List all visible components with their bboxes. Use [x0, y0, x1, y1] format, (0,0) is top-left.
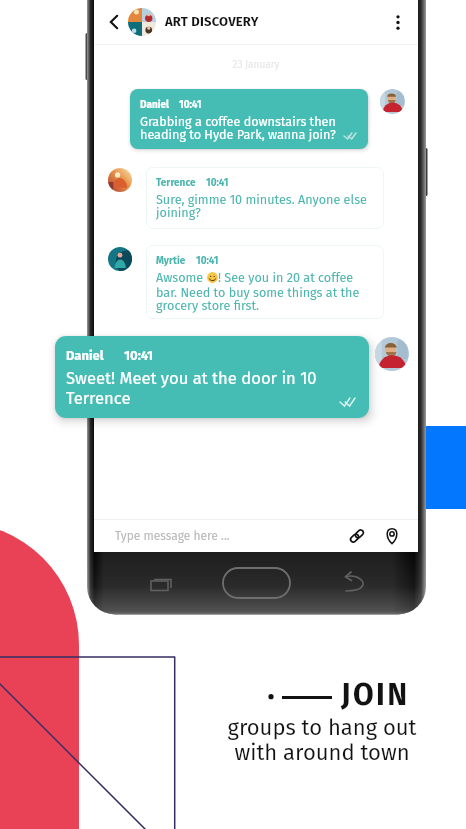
button[interactable]: Back: [103, 11, 125, 33]
button[interactable]: Daniel: [55, 336, 369, 418]
staticText: 10:41: [124, 348, 154, 364]
staticText: JOIN: [341, 677, 410, 713]
button[interactable]: Share location: [381, 525, 403, 547]
staticText: Awsome: [156, 270, 207, 285]
staticText: 23 January: [94, 59, 418, 71]
staticText: 10:41: [206, 177, 229, 189]
staticText: 10:41: [179, 99, 202, 111]
staticText: Sure, gimme 10 minutes. Anyone else join…: [156, 192, 367, 221]
button[interactable]: Daniel: [130, 89, 368, 149]
staticText: Daniel: [66, 348, 104, 364]
staticText: Grabbing a coffee downstairs then headin…: [140, 114, 336, 143]
staticText: bar. Need to buy some things at the groc…: [156, 285, 360, 314]
button[interactable]: Terrence: [146, 167, 384, 229]
staticText: Sweet! Meet you at the door in 10 Terren…: [66, 368, 317, 408]
button[interactable]: More options: [383, 7, 413, 37]
staticText: 10:41: [196, 255, 219, 267]
staticText: Daniel: [140, 99, 169, 111]
button[interactable]: Attach link: [346, 525, 368, 547]
staticText: ! See you in 20 at coffee: [218, 270, 354, 285]
staticText: Type message here ...: [115, 529, 230, 543]
staticText: Myrtie: [156, 255, 186, 267]
staticText: Terrence: [156, 177, 196, 189]
staticText: ART DISCOVERY: [165, 14, 259, 30]
button[interactable]: Myrtie: [146, 245, 384, 319]
staticText: groups to hang out with around town: [224, 714, 420, 766]
